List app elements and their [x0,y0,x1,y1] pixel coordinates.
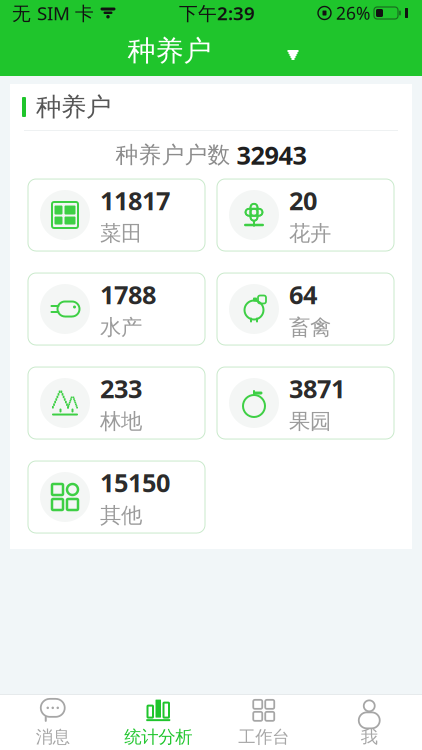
staticText: 水产 [100,314,142,340]
button[interactable]: 15150 [28,461,205,533]
staticText: 下午2:39 [179,1,255,25]
staticText: 林地 [100,408,142,434]
staticText: 种养户 [127,34,211,68]
staticText: 统计分析 [124,726,192,748]
button[interactable]: 我 [316,695,422,750]
button[interactable]: 统计分析 [105,695,211,750]
staticText: 64 [289,278,317,311]
staticText: 20 [289,184,317,217]
staticText: 花卉 [289,220,331,246]
staticText: 种养户 [36,91,111,122]
staticText: 3871 [289,372,345,405]
button[interactable]: 1788 [28,273,205,345]
button[interactable]: 工作台 [211,695,316,750]
button[interactable]: 3871 [217,367,394,439]
button[interactable]: 20 [217,179,394,251]
staticText: 消息 [36,726,70,748]
staticText: 工作台 [238,726,289,748]
staticText: 32943 [236,138,306,172]
staticText: 菜田 [100,220,142,246]
staticText: 其他 [100,502,142,528]
button[interactable]: 消息 [0,695,105,750]
button[interactable]: 种养户 选择 [0,26,422,76]
staticText: 15150 [100,466,170,499]
staticText: 畜禽 [289,314,331,340]
staticText: 233 [100,372,142,405]
staticText: 种养户户数 [115,141,230,169]
staticText: 果园 [289,408,331,434]
button[interactable]: 11817 [28,179,205,251]
staticText: 11817 [100,184,170,217]
button[interactable]: 64 [217,273,394,345]
staticText: 我 [361,726,378,748]
staticText: 1788 [100,278,156,311]
staticText: 无 SIM 卡 [12,1,94,25]
button[interactable]: 233 [28,367,205,439]
staticText: 26% [336,1,370,24]
